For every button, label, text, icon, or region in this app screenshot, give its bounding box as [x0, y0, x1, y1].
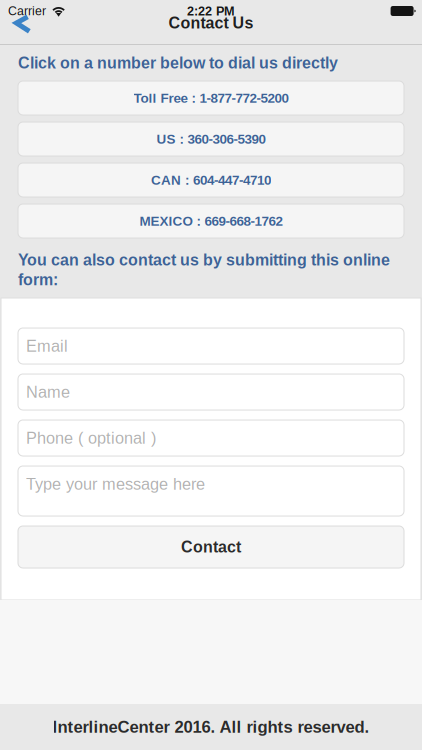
staticText: Email [26, 337, 68, 355]
staticText: Contact Us [168, 14, 253, 32]
staticText: Name [26, 383, 70, 401]
staticText: Carrier [8, 4, 46, 18]
staticText: 2:22 PM [187, 4, 235, 18]
button[interactable]: Toll Free : 1-877-772-5200 [18, 81, 404, 115]
button[interactable]: Type your message here [18, 466, 404, 516]
staticText: Click on a number below to dial us direc… [18, 54, 338, 72]
button[interactable]: CAN : 604-447-4710 [18, 163, 404, 197]
button[interactable]: Name [18, 374, 404, 410]
staticText: Contact [181, 538, 241, 556]
staticText: CAN : 604-447-4710 [151, 172, 271, 187]
staticText: US : 360-306-5390 [156, 131, 265, 146]
staticText: Type your message here [26, 475, 205, 493]
button[interactable]: Contact [18, 526, 404, 568]
button[interactable]: Phone ( optional ) [18, 420, 404, 456]
button[interactable]: MEXICO : 669-668-1762 [18, 204, 404, 238]
button[interactable]: Email [18, 328, 404, 364]
staticText: Toll Free : 1-877-772-5200 [133, 90, 288, 105]
button[interactable]: US : 360-306-5390 [18, 122, 404, 156]
button[interactable]: Back [5, 10, 39, 38]
staticText: MEXICO : 669-668-1762 [139, 213, 282, 228]
staticText: You can also contact us by submitting th… [18, 251, 390, 289]
staticText: InterlineCenter 2016. All rights reserve… [52, 718, 369, 736]
staticText: Phone ( optional ) [26, 429, 156, 447]
